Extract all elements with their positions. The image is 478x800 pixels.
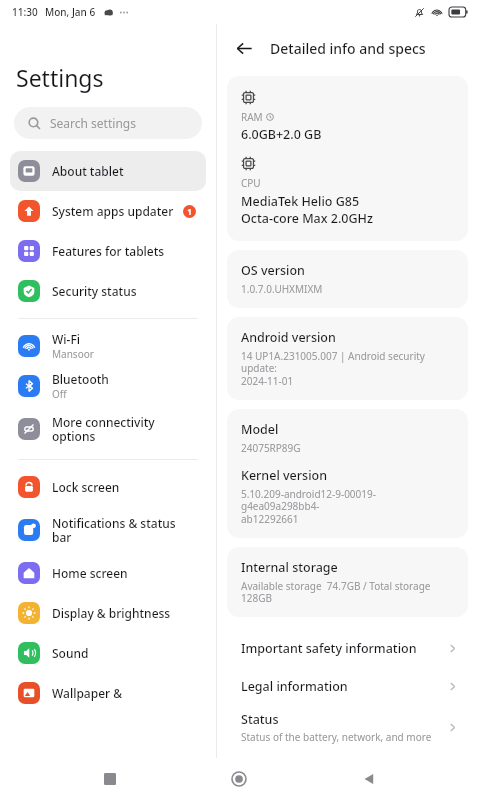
button[interactable]: Lock screen	[10, 467, 206, 507]
button[interactable]: System apps updater	[10, 191, 206, 231]
button[interactable]: Search settings	[14, 107, 202, 139]
staticText: More connectivity options	[52, 414, 155, 445]
button[interactable]: Status	[217, 705, 478, 749]
staticText: Kernel version	[241, 467, 327, 484]
staticText: 14 UP1A.231005.007 | Android security up…	[241, 349, 454, 388]
button[interactable]: Features for tablets	[10, 231, 206, 271]
staticText: 1.0.7.0.UHXMIXM	[241, 282, 323, 296]
staticText: Status	[241, 711, 279, 728]
button[interactable]: Wallpaper &	[10, 673, 206, 713]
staticText: Octa-core Max 2.0GHz	[241, 210, 373, 227]
staticText: System apps updater	[52, 203, 174, 219]
staticText: Search settings	[50, 115, 136, 131]
staticText: Wallpaper &	[52, 685, 123, 701]
button[interactable]: Home	[219, 759, 259, 799]
staticText: OS version	[241, 262, 305, 279]
button[interactable]: Wi-Fi	[10, 326, 206, 366]
staticText: Security status	[52, 283, 137, 299]
button[interactable]: Legal information	[217, 667, 478, 705]
staticText: Features for tablets	[52, 243, 165, 259]
button[interactable]: Display & brightness	[10, 593, 206, 633]
staticText: 11:30	[12, 5, 38, 19]
staticText: Status of the battery, network, and more	[241, 730, 432, 744]
staticText: RAM	[241, 110, 263, 124]
button[interactable]: Internal storage	[227, 547, 468, 617]
staticText: Off	[52, 387, 67, 401]
staticText: Wi-Fi	[52, 331, 80, 347]
staticText: CPU	[241, 176, 261, 190]
button[interactable]: Back	[229, 33, 259, 63]
button[interactable]: Recents	[90, 759, 130, 799]
staticText: About tablet	[52, 163, 124, 179]
staticText: Lock screen	[52, 479, 120, 495]
button[interactable]: Security status	[10, 271, 206, 311]
button[interactable]: Back	[349, 759, 389, 799]
staticText: Sound	[52, 645, 89, 661]
staticText: 5.10.209-android12-9-00019-g4ea09a298bb4…	[241, 487, 454, 526]
staticText: 6.0GB+2.0 GB	[241, 126, 322, 143]
staticText: Android version	[241, 329, 336, 346]
button[interactable]: RAM	[227, 76, 468, 241]
staticText: MediaTek Helio G85	[241, 193, 360, 210]
button[interactable]: Sound	[10, 633, 206, 673]
staticText: Available storage 74.7GB / Total storage…	[241, 579, 431, 605]
button[interactable]: Model	[227, 409, 468, 538]
button[interactable]: Bluetooth	[10, 366, 206, 406]
staticText: Settings	[16, 62, 104, 93]
button[interactable]: About tablet	[10, 151, 206, 191]
staticText: 24075RP89G	[241, 441, 301, 455]
staticText: Mon, Jan 6	[45, 5, 96, 19]
staticText: Legal information	[241, 678, 348, 695]
staticText: Detailed info and specs	[270, 39, 426, 58]
staticText: Internal storage	[241, 559, 338, 576]
button[interactable]: Home screen	[10, 553, 206, 593]
button[interactable]: Important safety information	[217, 629, 478, 667]
staticText: Bluetooth	[52, 371, 109, 387]
staticText: Home screen	[52, 565, 128, 581]
button[interactable]: OS version	[227, 250, 468, 308]
staticText: Model	[241, 421, 279, 438]
staticText: 1	[187, 206, 192, 217]
staticText: Notifications & status bar	[52, 515, 176, 546]
button[interactable]: More connectivity options	[10, 406, 206, 452]
staticText: Display & brightness	[52, 605, 171, 621]
staticText: Mansoor	[52, 347, 94, 361]
button[interactable]: Android version	[227, 317, 468, 400]
button[interactable]: Notifications & status bar	[10, 507, 206, 553]
staticText: Important safety information	[241, 640, 417, 657]
